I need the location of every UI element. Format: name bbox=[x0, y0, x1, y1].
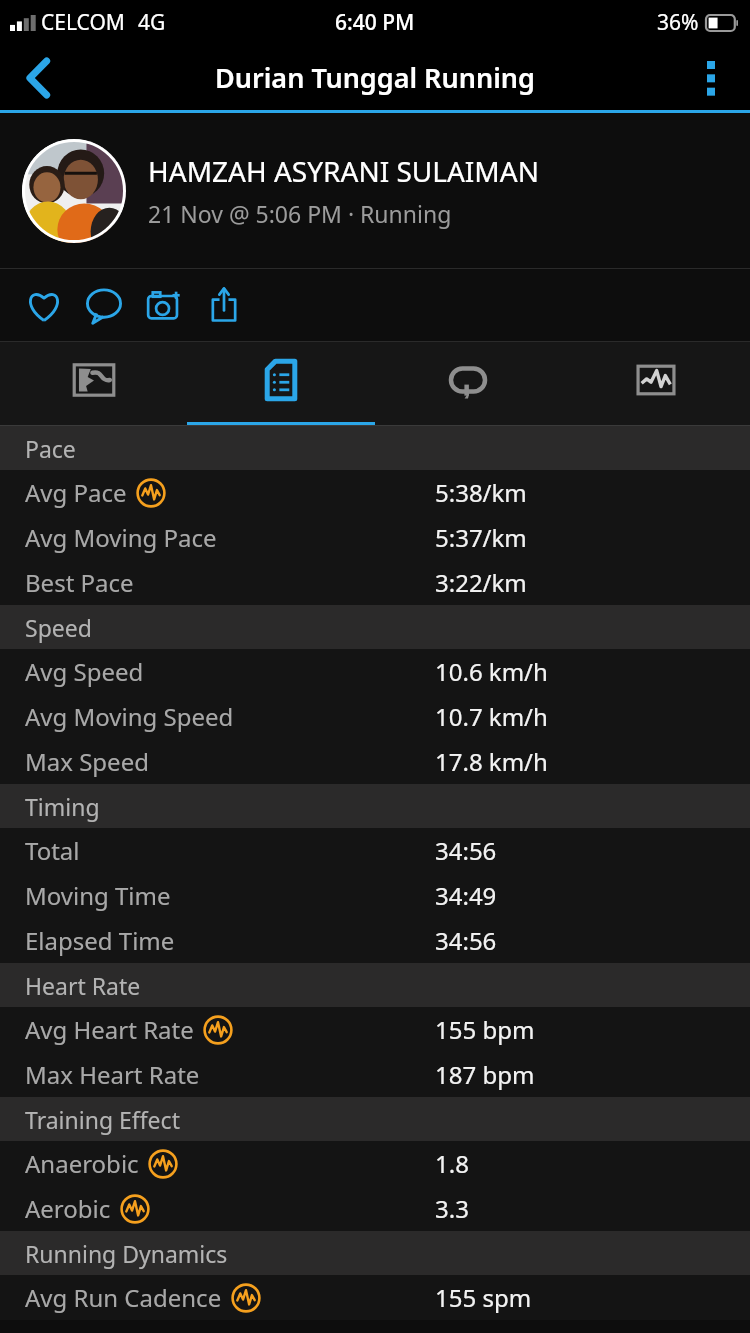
staticText: 5:37/km bbox=[435, 521, 527, 554]
button[interactable]: Anaerobic bbox=[0, 1141, 750, 1186]
staticText: 10.7 km/h bbox=[435, 700, 548, 733]
button[interactable]: More options bbox=[672, 45, 750, 110]
staticText: 6:40 PM bbox=[335, 8, 415, 37]
staticText: 34:49 bbox=[435, 879, 497, 912]
button[interactable]: Details bbox=[187, 342, 374, 426]
staticText: 155 spm bbox=[435, 1281, 532, 1314]
staticText: 36% bbox=[657, 8, 699, 37]
staticText: 10.6 km/h bbox=[435, 655, 548, 688]
staticText: CELCOM bbox=[41, 8, 125, 37]
button[interactable]: Avg Moving Pace bbox=[0, 515, 750, 560]
staticText: Best Pace bbox=[25, 566, 134, 599]
button[interactable]: Avg Heart Rate bbox=[0, 1007, 750, 1052]
staticText: Moving Time bbox=[25, 879, 171, 912]
staticText: 5:38/km bbox=[435, 476, 527, 509]
button[interactable]: Best Pace bbox=[0, 560, 750, 605]
staticText: Elapsed Time bbox=[25, 924, 175, 957]
staticText: 155 bpm bbox=[435, 1013, 535, 1046]
staticText: 21 Nov @ 5:06 PM · Running bbox=[148, 198, 452, 229]
staticText: Training Effect bbox=[25, 1104, 180, 1135]
button[interactable]: Laps bbox=[374, 342, 562, 426]
staticText: 4G bbox=[138, 8, 166, 37]
button[interactable]: Map bbox=[0, 342, 187, 426]
staticText: Avg Speed bbox=[25, 655, 144, 688]
staticText: Avg Run Cadence bbox=[25, 1281, 222, 1314]
staticText: Max Speed bbox=[25, 745, 149, 778]
button[interactable]: Elapsed Time bbox=[0, 918, 750, 963]
staticText: Heart Rate bbox=[25, 970, 141, 1001]
button[interactable]: HAMZAH ASYRANI SULAIMAN bbox=[0, 113, 750, 268]
staticText: Avg Heart Rate bbox=[25, 1013, 194, 1046]
button[interactable]: Add photo bbox=[134, 275, 194, 335]
staticText: Max Heart Rate bbox=[25, 1058, 200, 1091]
button[interactable]: Back bbox=[0, 45, 78, 110]
staticText: Avg Pace bbox=[25, 476, 127, 509]
staticText: 187 bpm bbox=[435, 1058, 535, 1091]
staticText: 3:22/km bbox=[435, 566, 527, 599]
staticText: 34:56 bbox=[435, 924, 497, 957]
button[interactable]: Max Heart Rate bbox=[0, 1052, 750, 1097]
staticText: Avg Moving Pace bbox=[25, 521, 217, 554]
staticText: Avg Moving Speed bbox=[25, 700, 234, 733]
button[interactable]: Avg Moving Speed bbox=[0, 694, 750, 739]
staticText: Speed bbox=[25, 612, 92, 643]
button[interactable]: Avg Pace bbox=[0, 470, 750, 515]
staticText: 17.8 km/h bbox=[435, 745, 548, 778]
staticText: Aerobic bbox=[25, 1192, 111, 1225]
staticText: Total bbox=[25, 834, 80, 867]
staticText: 3.3 bbox=[435, 1192, 469, 1225]
button[interactable]: Total bbox=[0, 828, 750, 873]
staticText: Anaerobic bbox=[25, 1147, 139, 1180]
button[interactable]: Like bbox=[14, 275, 74, 335]
button[interactable]: Max Speed bbox=[0, 739, 750, 784]
staticText: Durian Tunggal Running bbox=[215, 59, 535, 96]
button[interactable]: Moving Time bbox=[0, 873, 750, 918]
button[interactable]: Aerobic bbox=[0, 1186, 750, 1231]
button[interactable]: Avg Speed bbox=[0, 649, 750, 694]
staticText: Running Dynamics bbox=[25, 1238, 228, 1269]
staticText: HAMZAH ASYRANI SULAIMAN bbox=[148, 152, 539, 190]
staticText: 1.8 bbox=[435, 1147, 469, 1180]
button[interactable]: Graphs bbox=[562, 342, 750, 426]
button[interactable]: Comment bbox=[74, 275, 134, 335]
staticText: 34:56 bbox=[435, 834, 497, 867]
staticText: Pace bbox=[25, 433, 76, 464]
button[interactable]: Share bbox=[194, 275, 254, 335]
button[interactable]: Avg Run Cadence bbox=[0, 1275, 750, 1320]
staticText: Timing bbox=[25, 791, 100, 822]
